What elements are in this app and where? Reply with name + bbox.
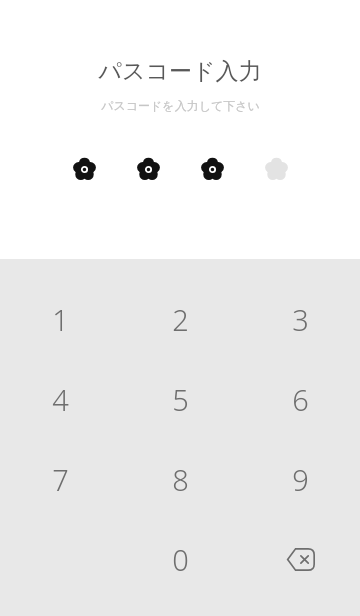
button[interactable]: 5	[120, 359, 240, 439]
button[interactable]: 0	[120, 519, 240, 599]
staticText: 3	[292, 300, 309, 339]
staticText: 1	[52, 300, 69, 339]
staticText: パスコード入力	[98, 57, 262, 86]
staticText: 4	[52, 380, 69, 419]
button[interactable]: 3	[240, 279, 360, 359]
staticText: 8	[172, 460, 189, 499]
button[interactable]: 2	[120, 279, 240, 359]
staticText: 7	[52, 460, 69, 499]
staticText: 6	[292, 380, 309, 419]
staticText: パスコードを入力して下さい	[101, 98, 260, 113]
staticText: 0	[172, 540, 189, 579]
button[interactable]: Delete	[240, 519, 360, 599]
button[interactable]: 4	[0, 359, 120, 439]
staticText: 5	[172, 380, 189, 419]
button[interactable]: 7	[0, 439, 120, 519]
staticText: 2	[172, 300, 189, 339]
staticText: 9	[292, 460, 309, 499]
button[interactable]: 6	[240, 359, 360, 439]
button[interactable]: 1	[0, 279, 120, 359]
button[interactable]: 9	[240, 439, 360, 519]
button[interactable]: 8	[120, 439, 240, 519]
